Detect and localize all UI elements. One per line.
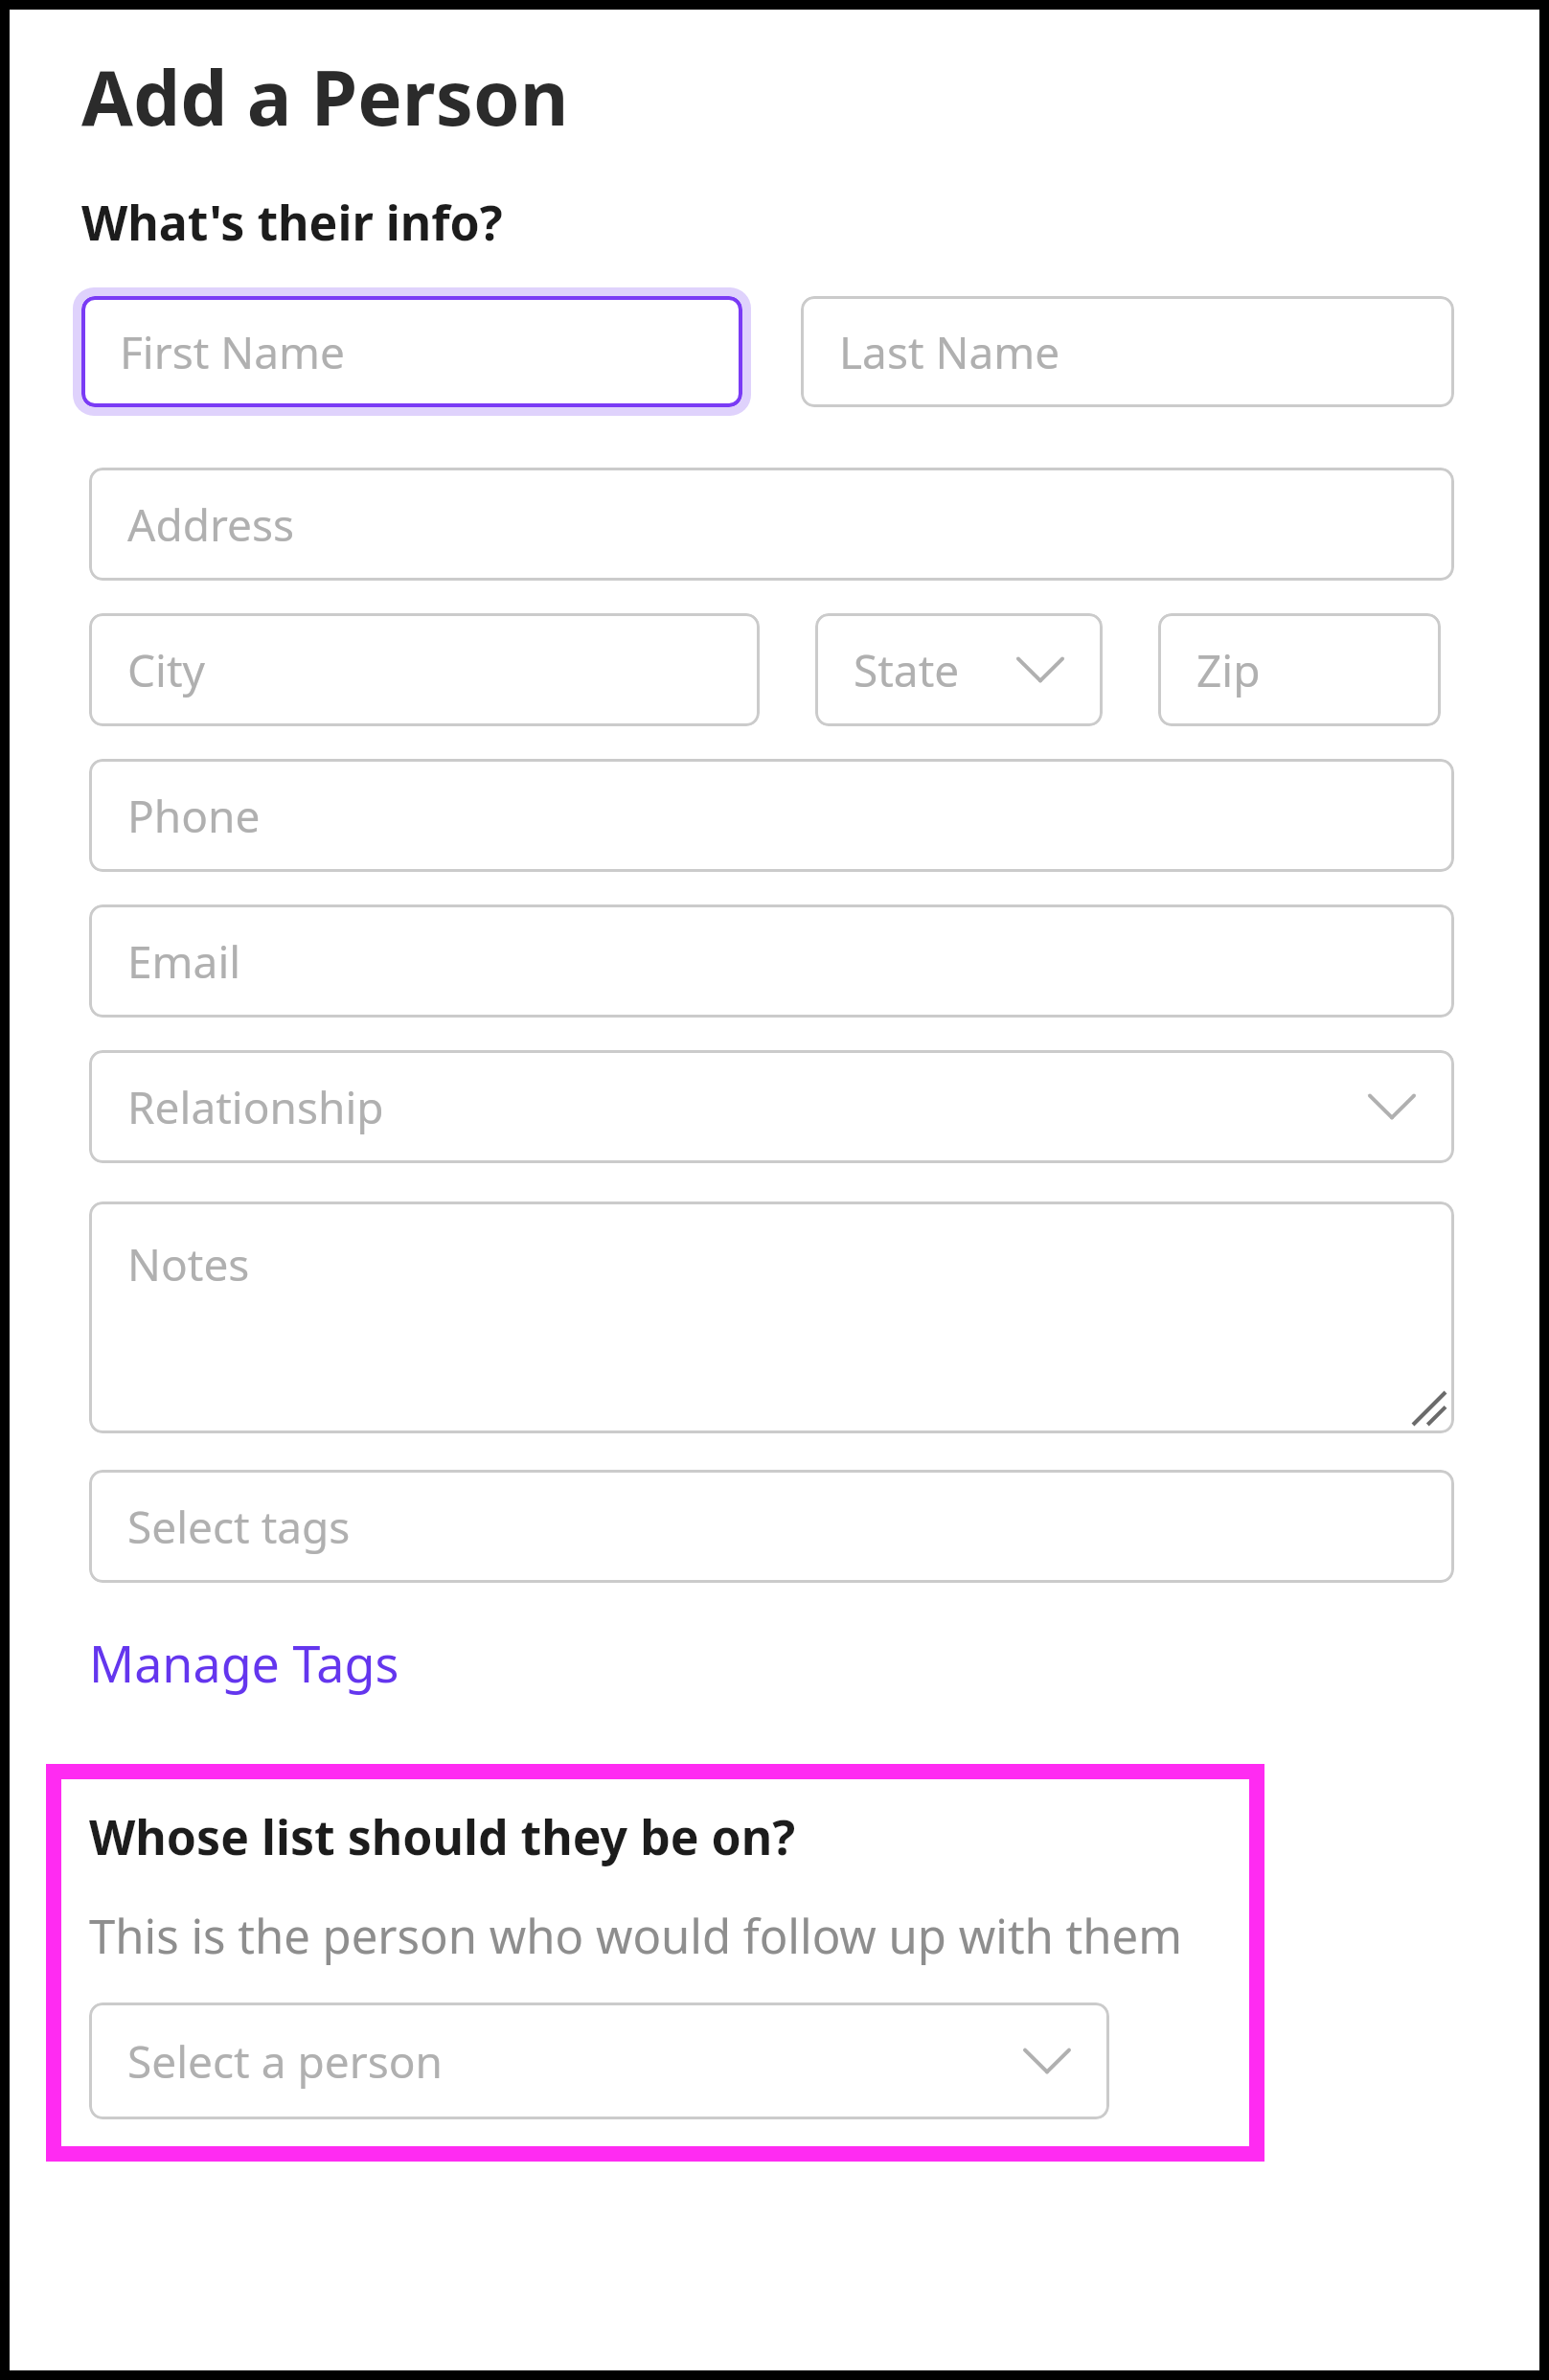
staticText: Add a Person — [81, 46, 569, 148]
other: Open Relationship menu — [1370, 1092, 1414, 1121]
staticText: Last Name — [839, 322, 1060, 382]
staticText: Address — [127, 494, 295, 555]
other: Open Select a person menu — [1025, 2047, 1069, 2075]
staticText: What's their info? — [81, 190, 503, 255]
button[interactable]: Address — [89, 468, 1454, 581]
button[interactable]: Select a person — [89, 2002, 1109, 2119]
button[interactable]: Select tags — [89, 1470, 1454, 1583]
staticText: Email — [127, 931, 241, 992]
staticText: Select a person — [127, 2031, 443, 2092]
staticText: First Name — [120, 322, 346, 382]
button[interactable]: Relationship — [89, 1050, 1454, 1163]
other: Resize notes — [1413, 1392, 1446, 1425]
button[interactable]: Last Name — [801, 296, 1454, 407]
staticText: This is the person who would follow up w… — [89, 1904, 1183, 1968]
staticText: State — [854, 640, 960, 700]
staticText: Relationship — [127, 1077, 384, 1137]
button[interactable]: State — [815, 613, 1103, 726]
staticText: Whose list should they be on? — [89, 1804, 796, 1869]
button[interactable]: City — [89, 613, 760, 726]
button[interactable]: Manage Tags — [89, 1629, 399, 1697]
staticText: Zip — [1196, 640, 1261, 700]
button[interactable]: Email — [89, 904, 1454, 1018]
staticText: City — [127, 640, 206, 700]
button[interactable]: Phone — [89, 759, 1454, 872]
staticText: Phone — [127, 786, 261, 846]
staticText: Notes — [127, 1234, 250, 1294]
button[interactable]: Notes — [89, 1201, 1454, 1433]
button[interactable]: First Name — [81, 296, 742, 407]
staticText: Manage Tags — [89, 1629, 399, 1697]
other: Open State menu — [1018, 655, 1062, 684]
staticText: Select tags — [127, 1497, 351, 1557]
button[interactable]: Zip — [1158, 613, 1441, 726]
